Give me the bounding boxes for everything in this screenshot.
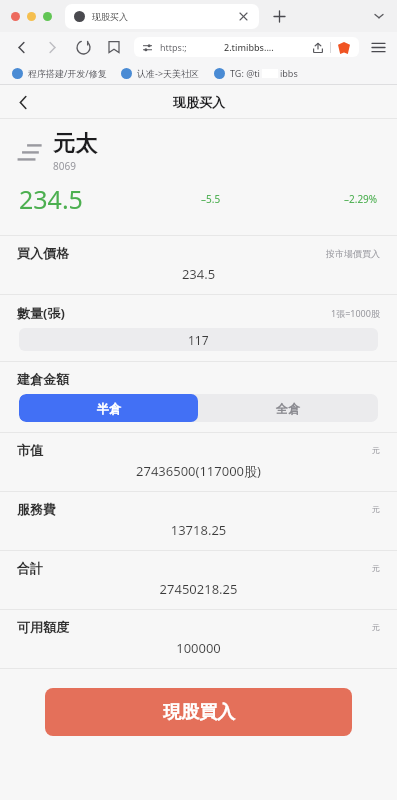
button[interactable]: New tab — [269, 6, 289, 26]
staticText: 半倉 — [97, 401, 121, 416]
staticText: 元太 — [53, 130, 97, 158]
staticText: 234.5 — [0, 265, 397, 283]
staticText: 元 — [372, 445, 380, 455]
staticText: https:; — [160, 41, 187, 53]
staticText: 8069 — [53, 159, 76, 173]
staticText: –5.5 — [201, 192, 221, 206]
button[interactable]: 117 — [19, 328, 378, 351]
staticText: 買入價格 — [17, 245, 69, 261]
staticText: 元 — [372, 504, 380, 514]
staticText: 全倉 — [276, 401, 300, 416]
button[interactable]: 全倉 — [198, 394, 378, 422]
staticText: 市值 — [17, 442, 43, 458]
staticText: 1張=1000股 — [331, 307, 380, 319]
button[interactable]: Back — [12, 38, 30, 56]
staticText: TG: @ti — [230, 67, 260, 79]
staticText: 可用額度 — [17, 619, 69, 635]
button[interactable]: 程序搭建/开发/修复 — [12, 67, 107, 79]
staticText: 234.5 — [19, 182, 83, 216]
button[interactable]: https:; — [143, 37, 350, 57]
staticText: 2.timibbs.... — [224, 41, 274, 53]
staticText: 现股买入 — [173, 94, 225, 110]
staticText: 认准->天美社区 — [137, 67, 200, 79]
button[interactable]: Back — [10, 89, 36, 115]
staticText: 100000 — [0, 639, 397, 657]
button[interactable]: Reload — [74, 38, 92, 56]
button[interactable]: Close tab — [237, 10, 250, 23]
button[interactable]: Bookmark — [105, 38, 123, 56]
staticText: 服務費 — [17, 501, 56, 517]
button[interactable]: TG: @ti — [214, 67, 298, 79]
button[interactable]: Forward — [43, 38, 61, 56]
staticText: 現股買入 — [163, 701, 235, 724]
staticText: 合計 — [17, 560, 43, 576]
staticText: 117 — [188, 332, 209, 348]
staticText: 27436500(117000股) — [0, 462, 397, 480]
button[interactable]: Share — [311, 41, 324, 54]
staticText: 27450218.25 — [0, 580, 397, 598]
staticText: 13718.25 — [0, 521, 397, 539]
button[interactable]: Brave shields — [337, 41, 350, 54]
staticText: 程序搭建/开发/修复 — [28, 67, 107, 79]
staticText: 元 — [372, 622, 380, 632]
button[interactable]: 认准->天美社区 — [121, 67, 200, 79]
staticText: ibbs — [280, 67, 298, 79]
staticText: 按市場價買入 — [326, 248, 380, 259]
staticText: 现股买入 — [92, 11, 128, 22]
staticText: 建倉金額 — [17, 371, 69, 387]
staticText: 元 — [372, 563, 380, 573]
button[interactable]: 现股买入 — [74, 4, 250, 29]
staticText: –2.29% — [344, 192, 378, 206]
button[interactable]: 現股買入 — [45, 688, 352, 736]
button[interactable]: Tab list — [369, 6, 389, 26]
button[interactable]: 半倉 — [19, 394, 198, 422]
button[interactable]: Menu — [369, 38, 387, 56]
staticText: 數量(張) — [17, 304, 65, 322]
